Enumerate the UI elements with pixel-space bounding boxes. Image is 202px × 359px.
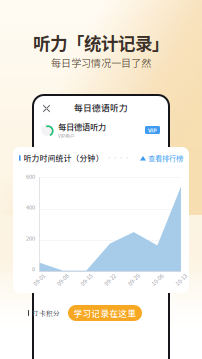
staticText: 200 <box>26 234 35 242</box>
button[interactable]: 关闭 <box>40 102 51 113</box>
staticText: 400 <box>26 203 35 211</box>
staticText: 每日德语听力 <box>58 120 106 132</box>
staticText: 打卡积分 <box>32 308 60 318</box>
staticText: 09-22 <box>103 275 117 283</box>
staticText: 每日德语听力 <box>74 101 128 114</box>
staticText: VIP <box>148 126 157 134</box>
button[interactable]: VIP <box>145 126 160 134</box>
staticText: 600 <box>26 172 35 180</box>
staticText: 10-06 <box>150 275 164 283</box>
staticText: 听力「统计记录」 <box>33 30 169 55</box>
staticText: · · · · <box>107 154 130 162</box>
staticText: 09-15 <box>79 275 93 283</box>
staticText: 每日学习情况一目了然 <box>51 55 151 70</box>
staticText: 09-08 <box>56 275 70 283</box>
staticText: 09-29 <box>127 275 141 283</box>
staticText: 学习记录在这里 <box>73 307 136 319</box>
staticText: 查看排行榜 <box>148 153 183 163</box>
button[interactable]: 查看排行榜 <box>140 153 183 163</box>
staticText: 0 <box>32 265 35 273</box>
staticText: 10-13 <box>174 275 188 283</box>
staticText: VIP用户 <box>58 132 75 139</box>
staticText: 听力时间统计（分钟） <box>24 152 104 164</box>
button[interactable]: 学习记录在这里 <box>68 305 142 321</box>
staticText: 09-01 <box>32 275 46 283</box>
